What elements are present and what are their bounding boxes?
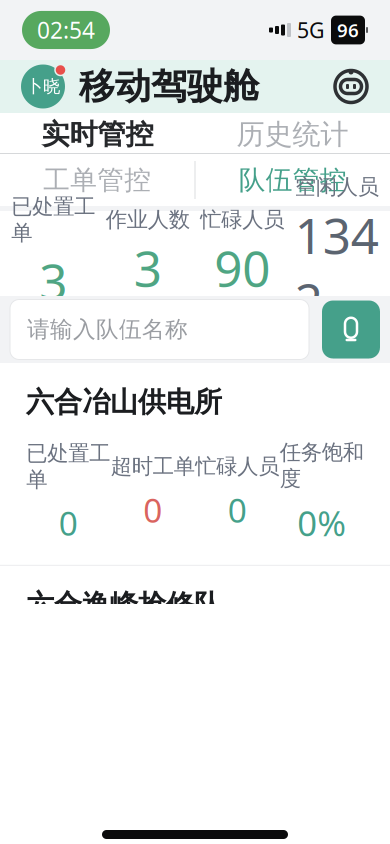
button[interactable]: 语音输入 (322, 300, 380, 358)
button[interactable]: 智能助手 (332, 67, 370, 105)
button[interactable]: 请输入队伍名称 (10, 299, 309, 359)
staticText: 请输入队伍名称 (27, 316, 188, 343)
staticText: 3 (134, 235, 162, 300)
staticText: 5G (297, 16, 325, 44)
staticText: 已处置工单 (11, 193, 95, 246)
button[interactable]: 六合雄州供电所 (0, 769, 390, 844)
staticText: 任务饱和度 (280, 439, 364, 492)
staticText: 队伍管控 (239, 164, 347, 196)
button[interactable]: 历史统计 (195, 103, 390, 163)
button[interactable]: 六合冶山供电所 (0, 363, 390, 566)
staticText: 忙碌人员 (200, 207, 284, 233)
staticText: 忙碌人员 (195, 453, 279, 480)
staticText: 已处置工单 (26, 440, 110, 493)
button[interactable]: 个人头像 (20, 63, 66, 109)
staticText: 0 (143, 488, 162, 532)
staticText: 工单管控 (43, 164, 151, 196)
staticText: 历史统计 (236, 117, 348, 152)
staticText: 0 (59, 501, 78, 545)
button[interactable]: 实时管控 (0, 103, 195, 163)
staticText: 1342 (295, 202, 379, 333)
button[interactable]: 工单管控 (0, 154, 194, 206)
staticText: 卜晓 (26, 76, 60, 97)
staticText: 作业人数 (106, 207, 190, 233)
staticText: 六合冶山供电所 (26, 385, 222, 419)
staticText: 96 (337, 18, 359, 42)
button[interactable]: 队伍管控 (195, 154, 390, 206)
staticText: 0% (297, 500, 346, 546)
staticText: 空闲人员 (295, 174, 379, 200)
staticText: 90 (214, 235, 270, 300)
staticText: 0 (228, 488, 247, 532)
staticText: 实时管控 (41, 117, 153, 152)
staticText: 02:54 (37, 15, 95, 45)
staticText: 六合逸峰抢修队 (26, 588, 222, 622)
staticText: 移动驾驶舱 (79, 64, 259, 109)
staticText: 3 (39, 248, 67, 313)
button[interactable]: 六合逸峰抢修队 (0, 566, 390, 769)
staticText: 超时工单 (111, 453, 195, 480)
